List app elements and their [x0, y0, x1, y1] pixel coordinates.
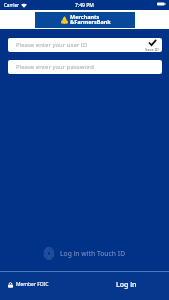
button[interactable]: Please enter your password	[8, 60, 162, 74]
staticText: Log in with Touch ID	[60, 249, 126, 258]
staticText: Please enter your password	[16, 63, 95, 71]
other: Save ID	[145, 40, 160, 52]
staticText: Save ID	[145, 47, 160, 52]
button[interactable]: Member FDIC	[0, 272, 49, 288]
staticText: Log in	[116, 280, 137, 290]
staticText: &FarmersBank	[70, 18, 111, 25]
button[interactable]: Log in with Touch ID	[0, 247, 169, 260]
staticText: Merchants	[70, 13, 100, 20]
button[interactable]: Please enter your user ID	[8, 38, 162, 52]
staticText: Member FDIC	[16, 281, 49, 288]
button[interactable]: Log in	[106, 272, 147, 290]
staticText: Please enter your user ID	[16, 41, 88, 49]
staticText: Carrier	[4, 2, 19, 8]
staticText: 7:49 PM	[75, 2, 94, 9]
